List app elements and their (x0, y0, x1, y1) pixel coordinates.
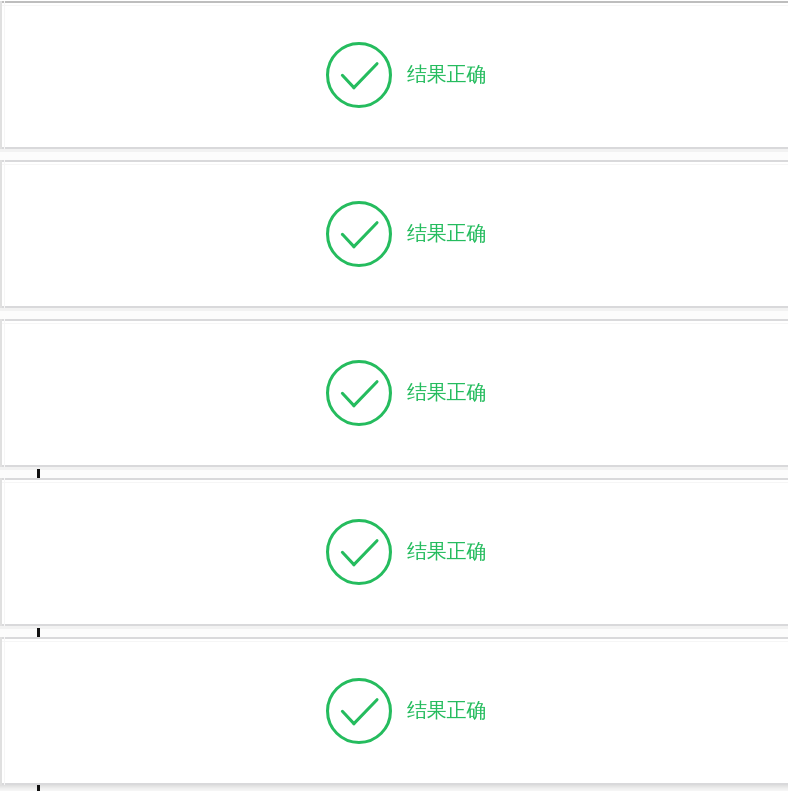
other: Result correct (326, 678, 392, 744)
other: Result correct (326, 201, 392, 267)
staticText: 结果正确 (407, 221, 487, 246)
staticText: 结果正确 (407, 62, 487, 87)
button[interactable]: Result correct (0, 478, 788, 626)
button[interactable]: Result correct (0, 1, 788, 149)
button[interactable]: Result correct (0, 637, 788, 785)
staticText: 结果正确 (407, 698, 487, 723)
staticText: 结果正确 (407, 539, 487, 564)
button[interactable]: Result correct (0, 319, 788, 467)
other: Result correct (326, 42, 392, 108)
other: Result correct (326, 360, 392, 426)
button[interactable]: Result correct (0, 160, 788, 308)
staticText: 结果正确 (407, 380, 487, 405)
other: Result correct (326, 519, 392, 585)
